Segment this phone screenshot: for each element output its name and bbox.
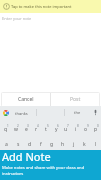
button[interactable]: Cancel xyxy=(1,92,50,107)
staticText: g xyxy=(50,141,54,148)
staticText: c xyxy=(36,156,39,163)
button[interactable]: o xyxy=(81,122,91,136)
button[interactable]: h xyxy=(57,137,68,151)
staticText: f xyxy=(40,141,42,148)
staticText: s xyxy=(17,141,20,148)
button[interactable]: w xyxy=(11,122,21,136)
button[interactable]: l xyxy=(90,137,101,151)
button[interactable]: x xyxy=(15,152,30,166)
button[interactable]: e xyxy=(21,122,31,136)
button[interactable]: z xyxy=(0,152,15,166)
staticText: u xyxy=(64,126,68,133)
staticText: i xyxy=(75,126,77,133)
staticText: Make notes and share with your class and… xyxy=(2,165,85,177)
staticText: 5 xyxy=(47,124,49,128)
staticText: thanks xyxy=(15,111,28,116)
staticText: o xyxy=(84,126,88,133)
staticText: t xyxy=(45,126,47,133)
staticText: h xyxy=(61,141,65,148)
button[interactable]: Voice input xyxy=(90,106,101,119)
staticText: l xyxy=(95,141,97,148)
staticText: Post xyxy=(70,96,81,103)
button[interactable]: r xyxy=(31,122,41,136)
staticText: Tap to make this note important xyxy=(11,4,72,9)
button[interactable]: p xyxy=(91,122,101,136)
button[interactable]: c xyxy=(30,152,45,166)
button[interactable]: s xyxy=(12,137,24,151)
button[interactable]: Post xyxy=(51,92,100,107)
staticText: k xyxy=(83,141,86,148)
staticText: 0 xyxy=(97,124,99,128)
staticText: y xyxy=(55,126,58,133)
staticText: 6 xyxy=(57,124,59,128)
button[interactable]: f xyxy=(35,137,46,151)
staticText: d xyxy=(28,141,32,148)
staticText: x xyxy=(21,156,24,163)
staticText: 3 xyxy=(27,124,29,128)
button[interactable]: q xyxy=(0,122,11,136)
button[interactable]: u xyxy=(61,122,71,136)
button[interactable]: t xyxy=(41,122,51,136)
button[interactable]: g xyxy=(46,137,57,151)
staticText: Enter your note xyxy=(2,16,32,21)
staticText: e xyxy=(25,126,28,133)
staticText: p xyxy=(94,126,98,133)
staticText: Add Note xyxy=(2,149,51,164)
staticText: 4 xyxy=(37,124,39,128)
button[interactable]: d xyxy=(24,137,35,151)
staticText: 8 xyxy=(77,124,79,128)
staticText: a xyxy=(5,141,8,148)
button[interactable]: Tap to make this note important xyxy=(0,0,101,13)
staticText: 1 xyxy=(7,124,9,128)
button[interactable]: i xyxy=(71,122,81,136)
staticText: 2 xyxy=(17,124,19,128)
staticText: r xyxy=(35,126,38,133)
button[interactable]: y xyxy=(51,122,61,136)
staticText: 7 xyxy=(67,124,69,128)
staticText: j xyxy=(73,141,75,148)
staticText: q xyxy=(4,126,8,133)
staticText: 9 xyxy=(87,124,89,128)
staticText: the xyxy=(74,110,81,115)
button[interactable]: k xyxy=(79,137,90,151)
button[interactable]: a xyxy=(0,137,12,151)
staticText: w xyxy=(14,126,18,133)
button[interactable]: thanks xyxy=(0,106,36,119)
button[interactable]: v xyxy=(45,152,59,166)
button[interactable]: the xyxy=(65,106,90,119)
button[interactable]: j xyxy=(68,137,79,151)
staticText: z xyxy=(6,156,9,163)
staticText: Cancel xyxy=(18,96,34,103)
